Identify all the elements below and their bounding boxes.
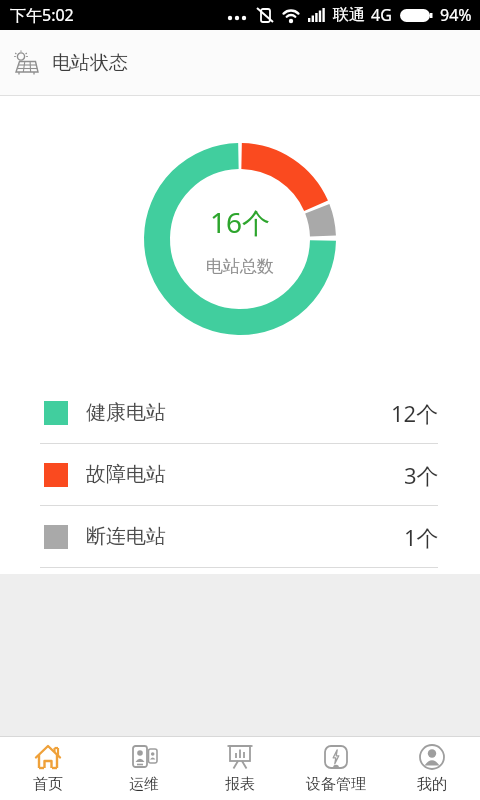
staticText: 下午5:02 (10, 4, 74, 26)
button[interactable]: 设备管理 (288, 737, 384, 800)
staticText: 联通 (333, 5, 365, 25)
button[interactable]: 我的 (384, 737, 480, 800)
staticText: 94% (440, 4, 472, 26)
staticText: 断连电站 (86, 524, 166, 549)
staticText: 健康电站 (86, 400, 166, 425)
staticText: 故障电站 (86, 462, 166, 487)
staticText: 12个 (391, 398, 439, 428)
staticText: 3个 (404, 460, 439, 490)
button[interactable]: 健康电站 (0, 382, 480, 444)
staticText: 4G (371, 4, 392, 26)
staticText: 我的 (417, 775, 447, 794)
button[interactable]: 断连电站 (0, 506, 480, 568)
staticText: 16个 (0, 203, 480, 241)
button[interactable]: 故障电站 (0, 444, 480, 506)
staticText: 首页 (33, 775, 63, 794)
staticText: 设备管理 (306, 775, 366, 794)
button[interactable]: 首页 (0, 737, 96, 800)
staticText: 报表 (225, 775, 255, 794)
staticText: 1个 (404, 522, 439, 552)
button[interactable]: 报表 (192, 737, 288, 800)
staticText: 运维 (129, 775, 159, 794)
staticText: 电站状态 (52, 51, 128, 75)
button[interactable]: 运维 (96, 737, 192, 800)
staticText: 电站总数 (0, 256, 480, 277)
